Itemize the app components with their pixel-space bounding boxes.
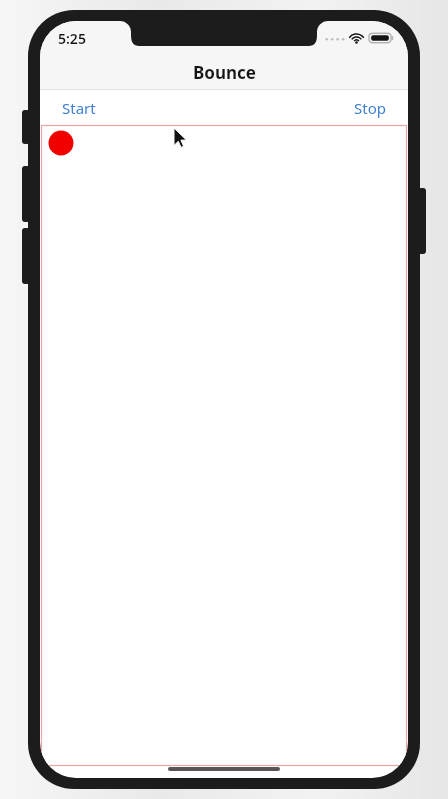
button[interactable]: Stop [342, 93, 398, 123]
staticText: Bounce [193, 61, 256, 84]
button[interactable]: Start [50, 93, 108, 123]
other: Home indicator [168, 767, 280, 771]
staticText: Start [62, 98, 96, 118]
staticText: 5:25 [58, 29, 86, 48]
staticText: Stop [354, 98, 386, 118]
